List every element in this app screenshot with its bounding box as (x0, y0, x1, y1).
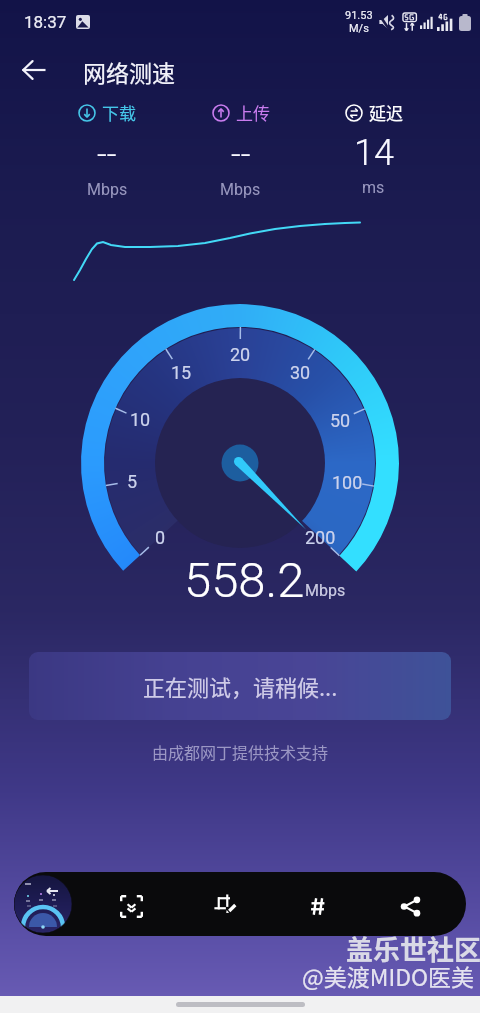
staticText: 100 (332, 472, 363, 493)
staticText: 下载 (102, 100, 136, 125)
button[interactable]: 正在测试，请稍候... (29, 652, 451, 720)
button[interactable]: 上传 (174, 100, 307, 199)
staticText: 18:37 (24, 12, 67, 32)
staticText: 由成都网丁提供技术支持 (0, 740, 480, 763)
staticText: 网络测速 (83, 55, 175, 88)
button[interactable]: Screenshot preview (14, 875, 72, 933)
button[interactable]: 延迟 (307, 100, 440, 197)
staticText: 0 (155, 527, 166, 548)
staticText: 15 (171, 362, 192, 383)
button[interactable]: 下载 (40, 100, 174, 199)
staticText: 558.2 (184, 552, 305, 609)
button[interactable]: Expand (109, 884, 153, 928)
staticText: 200 (305, 527, 336, 548)
button[interactable]: Tag (295, 884, 339, 928)
staticText: 5 (127, 471, 138, 492)
staticText: M/s (349, 22, 369, 35)
button[interactable]: Back (12, 48, 56, 92)
staticText: 20 (230, 344, 251, 365)
staticText: 上传 (236, 100, 270, 125)
button[interactable]: Edit (202, 883, 246, 927)
button[interactable]: Share (388, 884, 432, 928)
staticText: @美渡MIDO医美 (302, 959, 475, 992)
staticText: 正在测试，请稍候... (143, 670, 338, 702)
staticText: Mbps (87, 180, 128, 199)
staticText: 盖乐世社区 (346, 929, 480, 968)
staticText: 14 (354, 132, 394, 174)
staticText: -- (231, 134, 251, 174)
staticText: -- (97, 134, 117, 174)
staticText: Mbps (220, 180, 261, 199)
staticText: 50 (330, 410, 351, 431)
staticText: 延迟 (369, 100, 403, 125)
staticText: Mbps (305, 581, 346, 600)
staticText: 10 (130, 409, 151, 430)
staticText: ms (362, 178, 385, 197)
staticText: 91.53 (345, 9, 373, 22)
staticText: 30 (290, 362, 311, 383)
